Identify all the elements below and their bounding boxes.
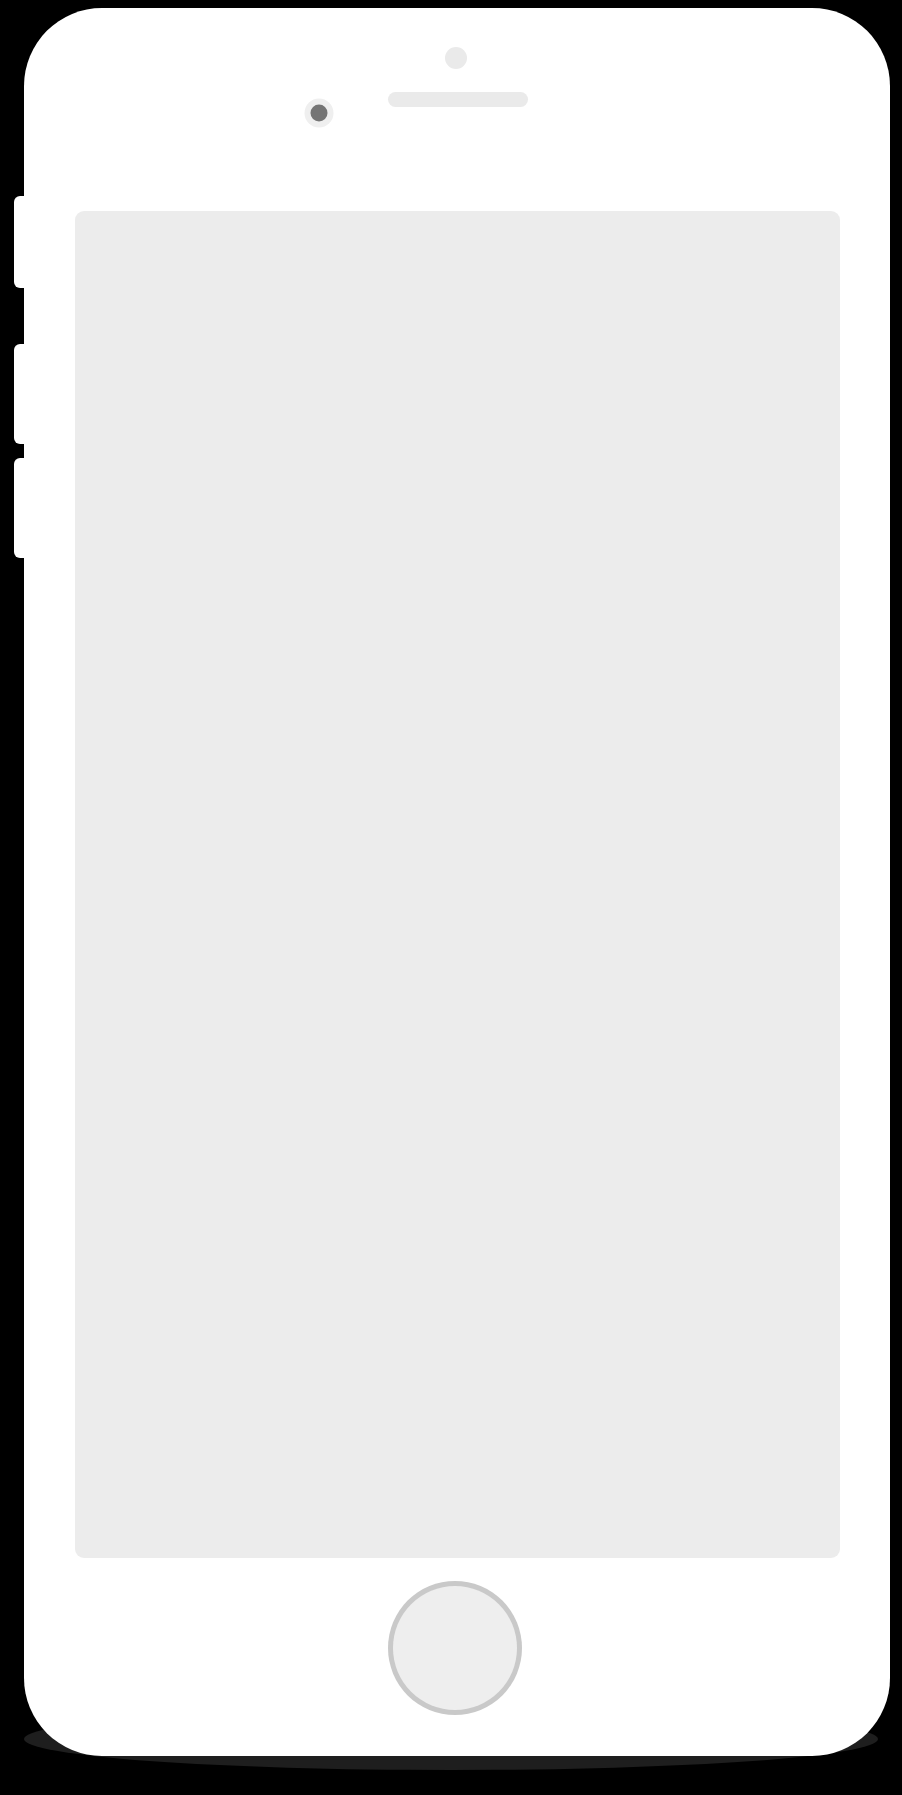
- button[interactable]: Home button: [388, 1581, 522, 1715]
